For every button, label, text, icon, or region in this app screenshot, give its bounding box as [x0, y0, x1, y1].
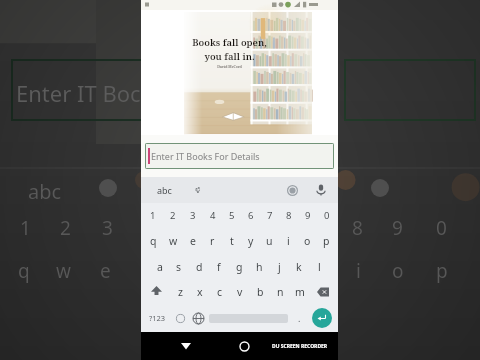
staticText: g	[236, 260, 243, 274]
staticText: e	[100, 258, 111, 284]
staticText: .	[298, 312, 301, 324]
button[interactable]: Shift	[143, 279, 170, 304]
staticText: t	[230, 234, 234, 248]
button[interactable]: 5	[222, 203, 241, 228]
button[interactable]: Enter IT Books For Details	[145, 143, 334, 169]
button[interactable]: r	[203, 228, 222, 254]
staticText: j	[278, 260, 281, 274]
button[interactable]: ?123	[144, 304, 171, 332]
button[interactable]: a	[150, 254, 169, 279]
button[interactable]: 9	[298, 203, 317, 228]
staticText: 2	[170, 209, 176, 222]
staticText: 1	[150, 209, 156, 222]
staticText: Enter IT Books For Details	[151, 150, 260, 162]
staticText: b	[257, 285, 264, 299]
button[interactable]: i	[279, 228, 298, 254]
button[interactable]: Help	[282, 180, 302, 200]
button[interactable]: x	[190, 279, 210, 304]
staticText: ?123	[149, 313, 166, 323]
button[interactable]: c	[210, 279, 230, 304]
staticText: y	[248, 234, 254, 248]
button[interactable]: q	[143, 228, 163, 254]
staticText: r	[210, 234, 215, 248]
button[interactable]: 6	[241, 203, 260, 228]
button[interactable]: g	[229, 254, 249, 279]
button[interactable]: z	[170, 279, 190, 304]
button[interactable]: Voice input	[310, 179, 332, 201]
staticText: u	[266, 234, 273, 248]
button[interactable]: Back	[173, 333, 199, 359]
button[interactable]: v	[230, 279, 250, 304]
button[interactable]: d	[189, 254, 209, 279]
button[interactable]: f	[209, 254, 229, 279]
staticText: o	[392, 258, 404, 284]
staticText: h	[256, 260, 263, 274]
staticText: i	[287, 234, 290, 248]
staticText: David McCord	[217, 64, 242, 69]
button[interactable]: s	[169, 254, 189, 279]
staticText: 7	[267, 209, 273, 222]
button[interactable]: abc	[147, 177, 181, 203]
button[interactable]: b	[250, 279, 270, 304]
button[interactable]: n	[270, 279, 290, 304]
staticText: 0	[324, 209, 330, 222]
staticText: f	[217, 260, 221, 274]
button[interactable]: 2	[163, 203, 183, 228]
button[interactable]: 4	[203, 203, 222, 228]
button[interactable]: 3	[183, 203, 203, 228]
staticText: i	[356, 258, 361, 284]
staticText: 9	[305, 209, 311, 222]
button[interactable]: Home	[231, 333, 257, 359]
staticText: x	[197, 285, 203, 299]
button[interactable]: p	[317, 228, 336, 254]
button[interactable]: u	[260, 228, 279, 254]
button[interactable]: Change language	[189, 304, 207, 332]
button[interactable]: k	[289, 254, 309, 279]
staticText: z	[178, 285, 183, 299]
staticText: ಳಿ	[195, 185, 201, 195]
staticText: e	[190, 234, 196, 248]
staticText: q	[150, 234, 157, 248]
button[interactable]: 8	[279, 203, 298, 228]
staticText: m	[295, 285, 305, 299]
button[interactable]: j	[269, 254, 289, 279]
button[interactable]: ಳಿ	[181, 177, 215, 203]
button[interactable]: w	[163, 228, 183, 254]
button[interactable]: Backspace	[310, 279, 336, 304]
staticText: 0	[436, 215, 447, 241]
button[interactable]: l	[309, 254, 329, 279]
staticText: 2	[60, 215, 71, 241]
staticText: DU SCREEN RECORDER	[272, 343, 328, 350]
staticText: 6	[248, 209, 254, 222]
staticText: n	[277, 285, 284, 299]
button[interactable]: 0	[317, 203, 336, 228]
button[interactable]: Enter	[312, 308, 332, 328]
button[interactable]: o	[298, 228, 317, 254]
staticText: 3	[190, 209, 196, 222]
staticText: l	[318, 260, 321, 274]
staticText: 4	[210, 209, 216, 222]
staticText: 5	[229, 209, 235, 222]
button[interactable]: t	[222, 228, 241, 254]
staticText: Enter IT Boc	[16, 78, 141, 108]
button[interactable]: Emoji	[171, 304, 189, 332]
staticText: 9	[392, 215, 403, 241]
staticText: k	[296, 260, 302, 274]
button[interactable]: e	[183, 228, 203, 254]
staticText: abc	[157, 184, 172, 196]
staticText: w	[56, 258, 71, 284]
staticText: p	[436, 258, 448, 284]
staticText: w	[169, 234, 178, 248]
button[interactable]: 7	[260, 203, 279, 228]
staticText: p	[323, 234, 330, 248]
staticText: you fall in.	[204, 50, 255, 63]
staticText: c	[217, 285, 223, 299]
button[interactable]: .	[290, 304, 308, 332]
staticText: q	[18, 258, 30, 284]
button[interactable]: h	[249, 254, 269, 279]
button[interactable]: y	[241, 228, 260, 254]
button[interactable]: 1	[143, 203, 163, 228]
button[interactable]: m	[290, 279, 310, 304]
staticText: 1	[20, 215, 31, 241]
